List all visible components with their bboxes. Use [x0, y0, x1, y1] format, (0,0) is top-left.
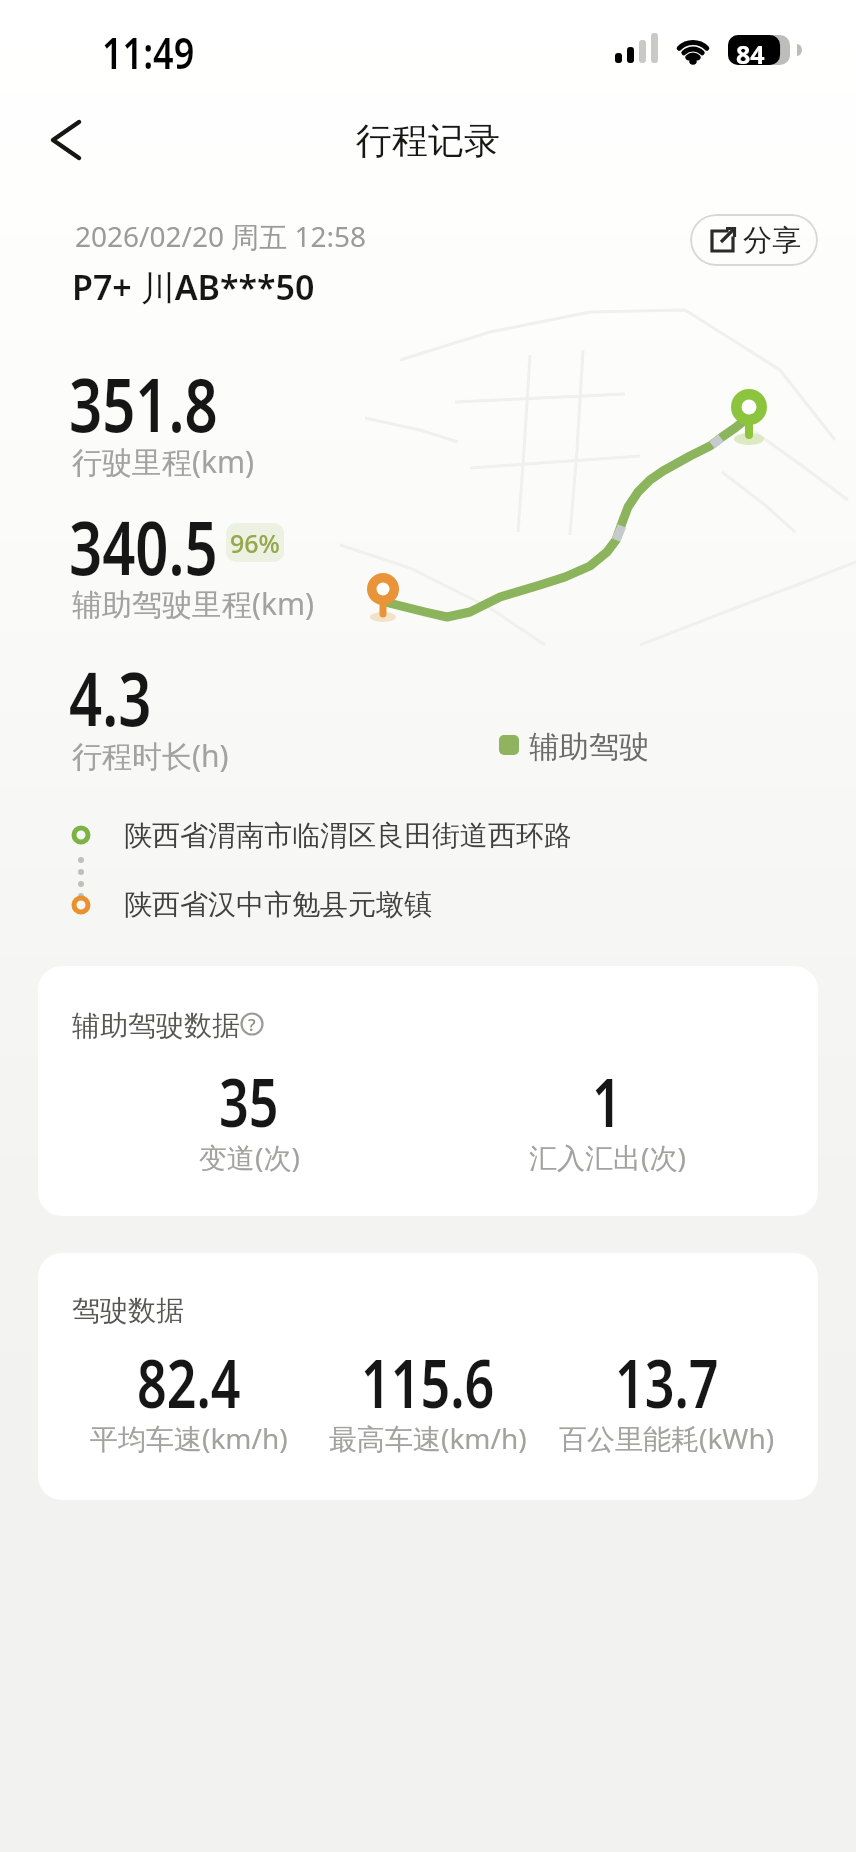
staticText: 变道(次) [199, 1138, 300, 1176]
staticText: 辅助驾驶 [529, 728, 649, 766]
staticText: 驾驶数据 [72, 1293, 184, 1328]
staticText: 84 [736, 37, 765, 71]
staticText: 行程时长(h) [72, 735, 229, 776]
staticText: 13.7 [615, 1336, 719, 1427]
staticText: 35 [219, 1055, 279, 1146]
button[interactable] [40, 110, 100, 170]
button[interactable]: 分享 [690, 214, 818, 266]
staticText: 4.3 [69, 647, 152, 748]
staticText: P7+ 川AB***50 [72, 264, 315, 310]
staticText: 行驶里程(km) [72, 441, 255, 482]
staticText: 行程记录 [356, 118, 500, 163]
staticText: 陕西省渭南市临渭区良田街道西环路 [124, 818, 572, 853]
staticText: 分享 [743, 222, 801, 259]
staticText: 汇入汇出(次) [529, 1138, 686, 1176]
staticText: 百公里能耗(kWh) [559, 1419, 775, 1457]
staticText: 340.5 [69, 496, 218, 597]
staticText: 96% [230, 526, 280, 560]
staticText: 平均车速(km/h) [90, 1419, 288, 1457]
staticText: 351.8 [69, 353, 218, 454]
staticText: 1 [592, 1055, 622, 1146]
staticText: ? [248, 1013, 256, 1036]
staticText: 11:49 [102, 23, 195, 82]
staticText: 2026/02/20 周五 12:58 [75, 217, 367, 255]
staticText: 辅助驾驶数据 [72, 1008, 240, 1043]
staticText: 82.4 [137, 1336, 241, 1427]
staticText: 辅助驾驶里程(km) [72, 583, 315, 624]
staticText: 115.6 [361, 1336, 495, 1427]
staticText: 最高车速(km/h) [329, 1419, 527, 1457]
staticText: 陕西省汉中市勉县元墩镇 [124, 887, 432, 922]
